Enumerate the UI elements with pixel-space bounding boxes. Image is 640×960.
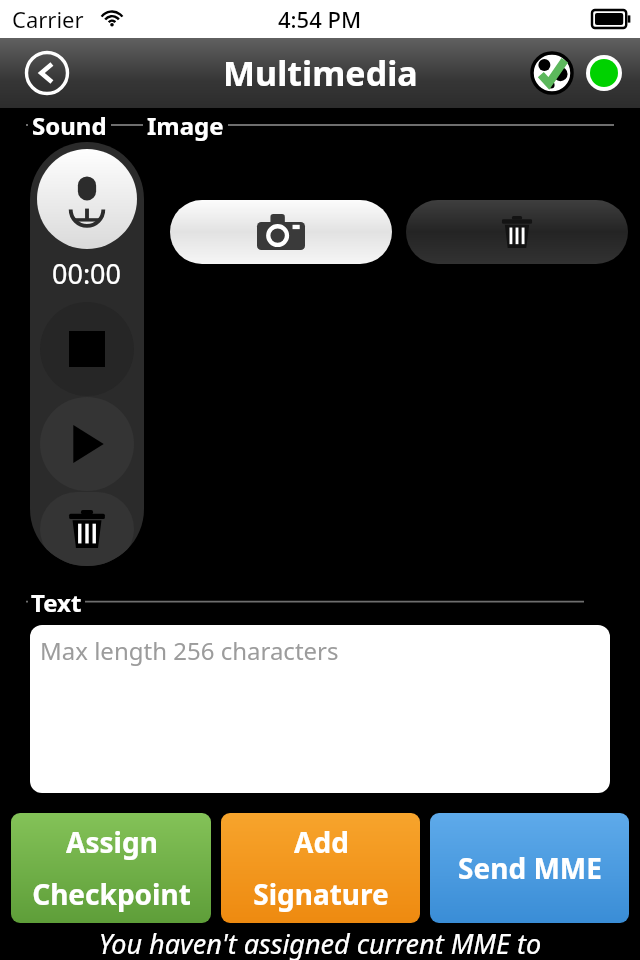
button[interactable]: Add	[221, 813, 420, 923]
staticText: Carrier	[12, 4, 84, 34]
button[interactable]: Verified	[530, 51, 574, 95]
button[interactable]: Delete image	[406, 200, 628, 264]
staticText: Send MME	[458, 849, 602, 887]
button[interactable]: Take photo	[170, 200, 392, 264]
staticText: Text	[31, 586, 82, 616]
staticText: 00:00	[52, 255, 122, 292]
button[interactable]: Record	[37, 149, 137, 249]
staticText: You haven't assigned current MME to	[0, 925, 640, 960]
staticText: Assign	[66, 823, 158, 861]
staticText: Max length 256 characters	[40, 634, 339, 667]
button[interactable]: Max length 256 characters	[30, 625, 610, 793]
staticText: Add	[294, 823, 349, 861]
button[interactable]: Stop	[40, 302, 134, 396]
button[interactable]: Delete recording	[40, 492, 134, 566]
staticText: Image	[147, 109, 224, 142]
button[interactable]: Status online	[582, 51, 626, 95]
button[interactable]: Play	[40, 397, 134, 491]
staticText: Multimedia	[223, 50, 418, 96]
button[interactable]: Send MME	[430, 813, 629, 923]
staticText: Sound	[32, 109, 107, 142]
staticText: Checkpoint	[32, 875, 191, 913]
button[interactable]: Back	[24, 50, 70, 96]
staticText: 4:54 PM	[278, 4, 362, 34]
staticText: Signature	[253, 875, 389, 913]
button[interactable]: Assign	[11, 813, 211, 923]
